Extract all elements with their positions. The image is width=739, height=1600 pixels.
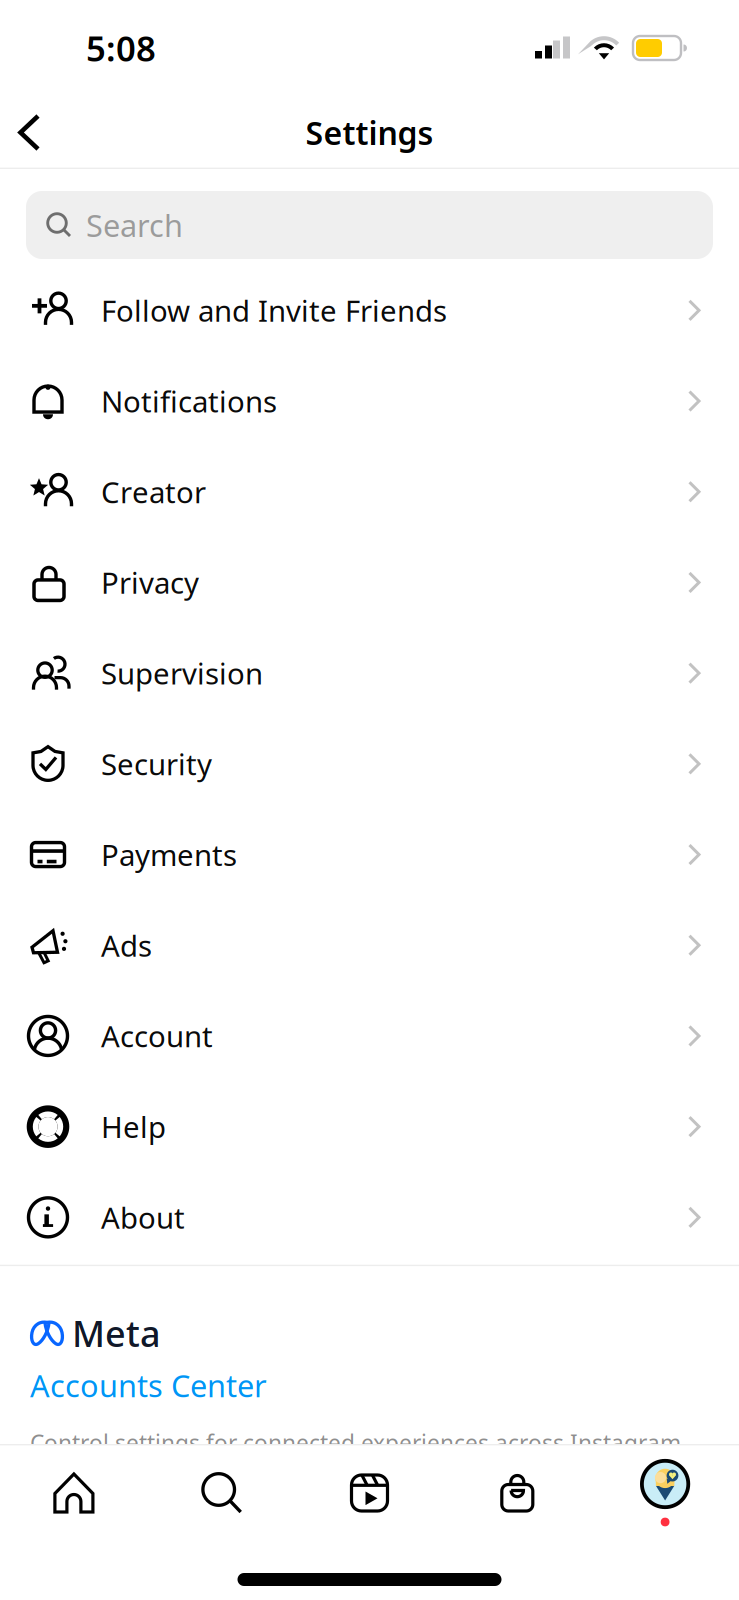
button[interactable]: Privacy <box>0 537 739 628</box>
button[interactable]: Notifications <box>0 356 739 446</box>
button[interactable]: Follow and Invite Friends <box>0 265 739 356</box>
button[interactable]: Account <box>0 991 739 1081</box>
button[interactable]: Creator <box>0 446 739 537</box>
staticText: Follow and Invite Friends <box>101 291 447 330</box>
staticText: Privacy <box>101 563 199 602</box>
button[interactable]: Shop <box>443 1444 591 1542</box>
staticText: Supervision <box>101 654 263 693</box>
button[interactable]: Help <box>0 1081 739 1172</box>
button[interactable]: Home <box>0 1444 148 1542</box>
staticText: Account <box>101 1016 213 1055</box>
button[interactable]: Search <box>148 1444 296 1542</box>
staticText: Settings <box>305 111 433 154</box>
staticText: 5:08 <box>86 25 156 71</box>
staticText: Help <box>101 1107 166 1146</box>
button[interactable]: Payments <box>0 809 739 900</box>
staticText: Search <box>86 205 183 245</box>
staticText: About <box>101 1198 185 1237</box>
staticText: Ads <box>101 926 152 965</box>
button[interactable]: Supervision <box>0 628 739 718</box>
button[interactable]: Reels <box>296 1444 443 1542</box>
button[interactable]: About <box>0 1172 739 1263</box>
staticText: Meta <box>72 1309 161 1357</box>
staticText: Notifications <box>101 382 277 421</box>
staticText: Accounts Center <box>30 1365 267 1406</box>
button[interactable]: Back <box>0 95 62 169</box>
button[interactable]: Accounts Center <box>30 1357 709 1406</box>
button[interactable]: Security <box>0 718 739 809</box>
staticText: Control settings for connected experienc… <box>30 1428 687 1488</box>
staticText: Payments <box>101 835 237 874</box>
button[interactable]: Ads <box>0 900 739 991</box>
staticText: Creator <box>101 472 206 511</box>
button[interactable]: Profile <box>591 1444 739 1542</box>
button[interactable]: Search <box>0 191 739 259</box>
staticText: Security <box>101 744 212 783</box>
